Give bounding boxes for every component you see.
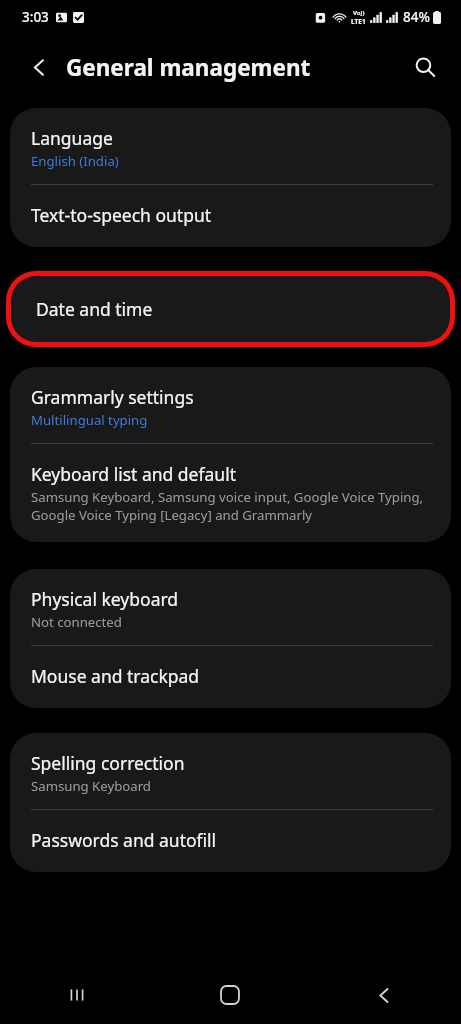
button[interactable]: Mouse and trackpad xyxy=(10,646,451,708)
staticText: Keyboard list and default xyxy=(31,462,236,486)
button[interactable]: Keyboard list and default xyxy=(10,444,451,542)
button[interactable]: Date and time xyxy=(11,276,450,342)
button[interactable]: Spelling correction xyxy=(10,733,451,809)
staticText: Text-to-speech output xyxy=(31,203,212,227)
staticText: Language xyxy=(31,126,113,150)
staticText: VoJ) xyxy=(353,9,365,17)
staticText: 3:03 xyxy=(22,8,49,26)
staticText: Mouse and trackpad xyxy=(31,664,200,688)
staticText: English (India) xyxy=(31,152,119,170)
button[interactable]: Back xyxy=(18,46,60,88)
staticText: Passwords and autofill xyxy=(31,828,217,852)
button[interactable]: Home xyxy=(153,966,307,1024)
staticText: Spelling correction xyxy=(31,751,185,775)
button[interactable]: Passwords and autofill xyxy=(10,810,451,872)
staticText: General management xyxy=(66,52,311,83)
button[interactable]: Recents xyxy=(0,966,153,1024)
staticText: Grammarly settings xyxy=(31,385,194,409)
staticText: Samsung Keyboard, Samsung voice input, G… xyxy=(31,488,427,524)
staticText: Date and time xyxy=(36,297,153,321)
button[interactable]: Grammarly settings xyxy=(10,367,451,443)
staticText: LTE1 xyxy=(351,17,366,26)
staticText: Multilingual typing xyxy=(31,411,148,429)
button[interactable]: Language xyxy=(10,108,451,184)
button[interactable]: Physical keyboard xyxy=(10,569,451,645)
staticText: 84% xyxy=(403,8,430,26)
staticText: Samsung Keyboard xyxy=(31,777,151,795)
button[interactable]: Text-to-speech output xyxy=(10,185,451,247)
button[interactable]: Back xyxy=(307,966,461,1024)
button[interactable]: Search xyxy=(403,45,447,89)
staticText: Physical keyboard xyxy=(31,587,179,611)
staticText: Not connected xyxy=(31,613,122,631)
